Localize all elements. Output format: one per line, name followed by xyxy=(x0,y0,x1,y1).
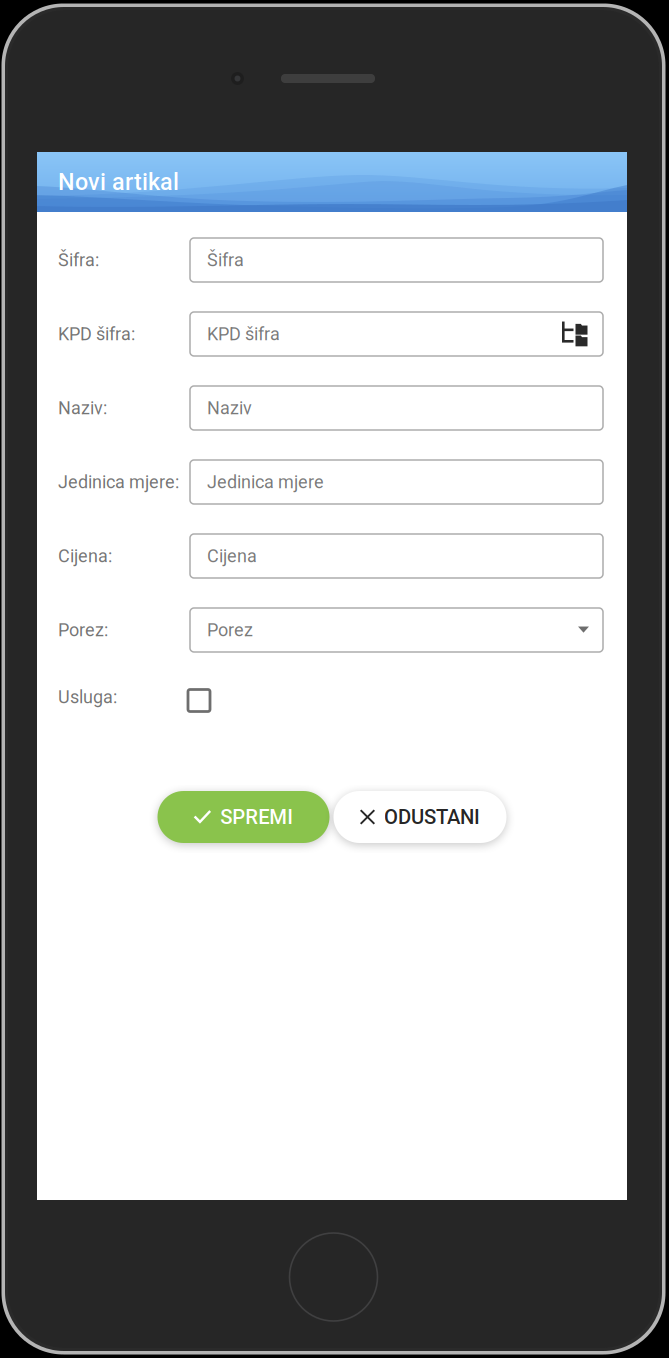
staticText: Naziv: xyxy=(58,397,107,419)
staticText: Cijena: xyxy=(58,545,112,567)
button[interactable]: SPREMI xyxy=(157,791,329,843)
button[interactable]: Šifra xyxy=(190,238,603,282)
staticText: KPD šifra: xyxy=(58,323,135,345)
staticText: Cijena xyxy=(207,545,257,567)
button[interactable]: ODUSTANI xyxy=(333,791,506,843)
staticText: Naziv xyxy=(207,397,252,419)
staticText: KPD šifra xyxy=(207,323,280,345)
staticText: Usluga: xyxy=(58,686,117,708)
button[interactable]: KPD šifra xyxy=(190,312,603,356)
staticText: Novi artikal xyxy=(58,168,179,196)
button[interactable]: Cijena xyxy=(190,534,603,578)
staticText: Šifra: xyxy=(58,249,99,271)
button[interactable]: Naziv xyxy=(190,386,603,430)
staticText: Porez xyxy=(207,619,253,641)
staticText: SPREMI xyxy=(220,805,293,829)
staticText: Porez: xyxy=(58,619,108,641)
button[interactable]: Usluga xyxy=(188,680,210,714)
button[interactable]: Porez xyxy=(190,608,603,652)
staticText: ODUSTANI xyxy=(384,805,480,829)
button[interactable]: Jedinica mjere xyxy=(190,460,603,504)
staticText: Šifra xyxy=(207,249,244,271)
staticText: Jedinica mjere xyxy=(207,471,324,493)
staticText: Jedinica mjere: xyxy=(58,471,179,493)
